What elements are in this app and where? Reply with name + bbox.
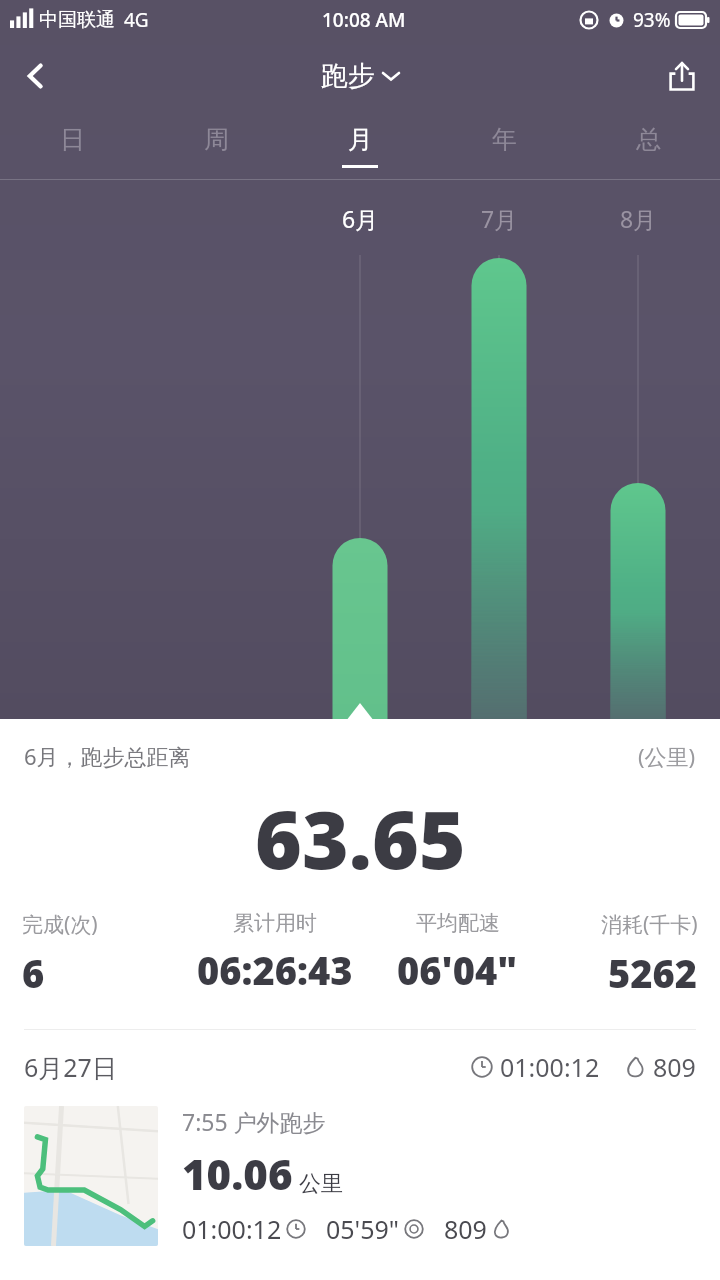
staticText: 6月，跑步总距离 (24, 741, 191, 771)
button[interactable]: 年 (432, 112, 576, 180)
staticText: 01:00:12 (500, 1050, 600, 1084)
staticText: 6月 (320, 203, 400, 234)
staticText: 消耗(千卡) (601, 910, 698, 939)
staticText: 63.65 (255, 783, 466, 892)
staticText: 7:55 户外跑步 (182, 1106, 326, 1137)
button[interactable]: Share (654, 48, 710, 104)
button[interactable]: 日 (0, 112, 144, 180)
staticText: 中国联通 (39, 8, 115, 32)
staticText: 10:08 AM (322, 7, 406, 33)
staticText: 06:26:43 (197, 944, 353, 996)
staticText: 93% (633, 7, 671, 33)
staticText: 809 (653, 1050, 696, 1084)
button[interactable]: 总 (576, 112, 720, 180)
staticText: 10.06 (182, 1145, 293, 1202)
button[interactable]: 周 (144, 112, 288, 180)
staticText: 8月 (598, 203, 678, 234)
staticText: 日 (60, 124, 85, 155)
staticText: (公里) (638, 741, 696, 771)
staticText: 6 (22, 947, 45, 999)
staticText: 完成(次) (22, 910, 98, 939)
staticText: 跑步 (321, 59, 375, 93)
staticText: 年 (492, 124, 517, 155)
staticText: 809 (444, 1212, 487, 1246)
staticText: 累计用时 (233, 910, 317, 936)
button[interactable]: 7:55 户外跑步 (24, 1106, 720, 1246)
staticText: 周 (204, 124, 229, 155)
staticText: 公里 (299, 1170, 343, 1198)
staticText: 总 (636, 124, 661, 155)
staticText: 平均配速 (416, 910, 500, 936)
staticText: 月 (348, 124, 373, 155)
staticText: 06'04" (397, 944, 518, 996)
staticText: 5262 (608, 947, 698, 999)
staticText: 6月27日 (24, 1050, 117, 1084)
staticText: 01:00:12 (182, 1212, 282, 1246)
button[interactable]: Back (8, 48, 64, 104)
staticText: 4G (124, 7, 149, 33)
staticText: 05'59" (326, 1212, 400, 1246)
staticText: 7月 (459, 203, 539, 234)
button[interactable]: 月 (288, 112, 432, 180)
button[interactable]: 跑步 (321, 59, 399, 93)
